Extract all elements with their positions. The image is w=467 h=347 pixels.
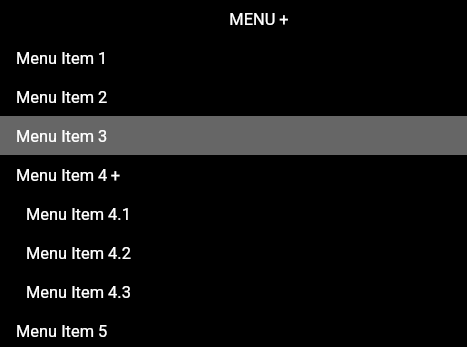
button[interactable]: Menu Item 1 [0, 38, 467, 77]
staticText: Menu Item 4.1 [26, 205, 131, 224]
staticText: Menu Item 1 [16, 49, 108, 68]
staticText: Menu Item 4 + [16, 166, 120, 185]
button[interactable]: Menu Item 4.3 [0, 272, 467, 311]
staticText: Menu Item 4.3 [26, 283, 131, 302]
staticText: Menu Item 5 [16, 322, 108, 341]
button[interactable]: Menu Item 2 [0, 77, 467, 116]
button[interactable]: Menu Item 4.1 [0, 194, 467, 233]
button[interactable]: Menu Item 4.2 [0, 233, 467, 272]
staticText: Menu Item 3 [16, 127, 108, 146]
button[interactable]: MENU + [0, 0, 467, 38]
staticText: Menu Item 2 [16, 88, 108, 107]
staticText: Menu Item 4.2 [26, 244, 131, 263]
button[interactable]: Menu Item 3 [0, 116, 467, 155]
button[interactable]: Menu Item 4 + [0, 155, 467, 194]
button[interactable]: Menu Item 5 [0, 311, 467, 347]
staticText: MENU + [229, 10, 289, 29]
